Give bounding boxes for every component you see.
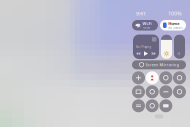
staticText: Home bbox=[143, 26, 151, 30]
button[interactable]: Volume bbox=[174, 35, 185, 59]
staticText: 9:41 bbox=[136, 10, 146, 17]
button[interactable]: Brightness bbox=[161, 35, 172, 59]
button[interactable]: Toggle bbox=[173, 71, 186, 84]
staticText: Screen Mirroring bbox=[145, 62, 178, 67]
button[interactable]: Wi-Fi bbox=[132, 20, 158, 30]
button[interactable]: Toggle bbox=[146, 85, 159, 98]
button[interactable]: Not Playing bbox=[133, 34, 159, 59]
button[interactable]: Personal hotspot bbox=[146, 71, 159, 84]
button[interactable]: Home bbox=[160, 20, 186, 30]
button[interactable]: Timer bbox=[132, 99, 145, 112]
button[interactable]: Add control bbox=[132, 71, 145, 84]
button[interactable]: Edit Controls bbox=[155, 114, 163, 118]
button[interactable]: Calculator bbox=[132, 85, 145, 98]
button[interactable]: Toggle bbox=[159, 71, 172, 84]
staticText: Wi-Fi bbox=[143, 21, 152, 26]
staticText: No Devices bbox=[168, 26, 182, 30]
button[interactable]: Low power mode bbox=[159, 85, 172, 98]
button[interactable]: Toggle bbox=[146, 99, 159, 112]
staticText: Not Playing bbox=[136, 45, 152, 49]
button[interactable]: Screen Mirroring bbox=[132, 60, 186, 69]
button[interactable]: Camera bbox=[159, 99, 172, 112]
staticText: 100% bbox=[168, 10, 182, 17]
staticText: Home bbox=[168, 21, 179, 26]
button[interactable]: Toggle bbox=[173, 85, 186, 98]
